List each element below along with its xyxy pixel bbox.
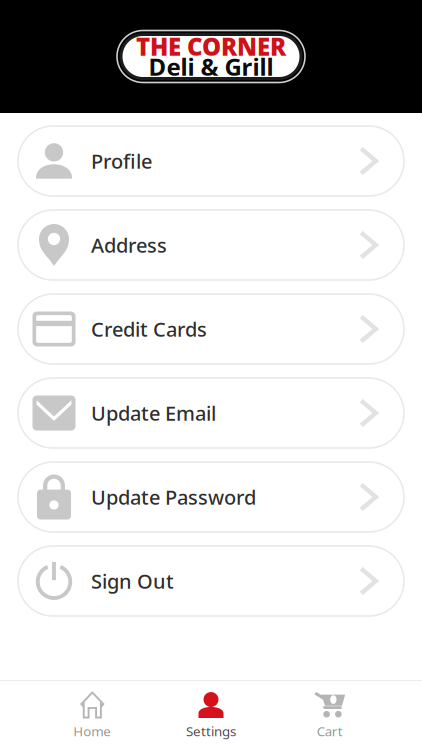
staticText: Update Password (91, 484, 256, 510)
staticText: Settings (186, 722, 236, 740)
staticText: Sign Out (91, 568, 174, 594)
staticText: Credit Cards (91, 316, 207, 342)
button[interactable]: Credit Cards (18, 294, 404, 364)
button[interactable]: Settings (152, 681, 270, 750)
staticText: THE CORNER (136, 31, 286, 62)
staticText: Update Email (91, 400, 216, 426)
staticText: Profile (91, 148, 152, 174)
button[interactable]: Update Password (18, 462, 404, 532)
staticText: Home (73, 722, 111, 740)
button[interactable]: Address (18, 210, 404, 280)
button[interactable]: Sign Out (18, 546, 404, 616)
button[interactable]: Profile (18, 126, 404, 196)
button[interactable]: Home (33, 681, 152, 750)
staticText: Address (91, 232, 167, 258)
button[interactable]: Cart (270, 681, 389, 750)
staticText: Cart (317, 722, 343, 740)
button[interactable]: Update Email (18, 378, 404, 448)
staticText: Deli & Grill (148, 51, 273, 82)
